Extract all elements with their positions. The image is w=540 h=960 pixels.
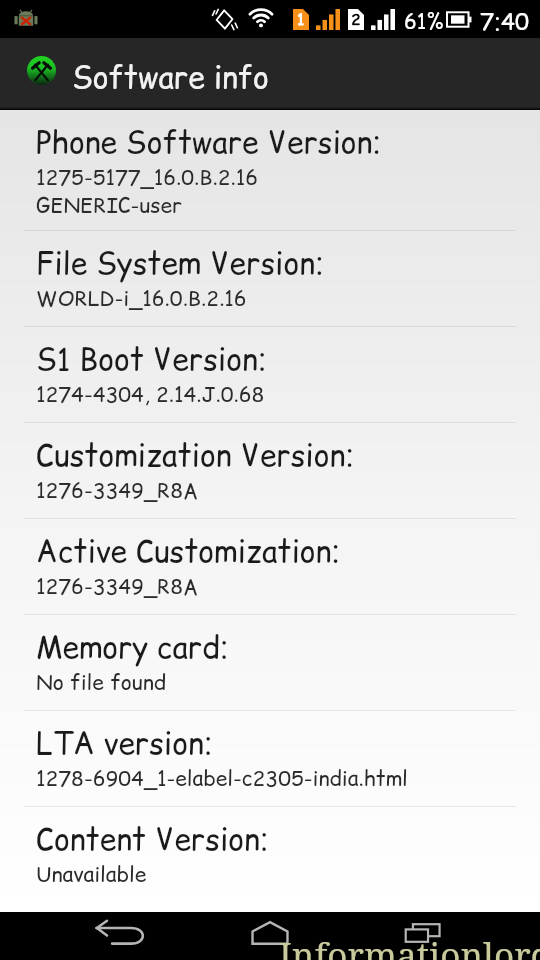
staticText: No file found: [36, 668, 167, 697]
button[interactable]: Content Version:: [0, 807, 540, 903]
button[interactable]: File System Version:: [0, 231, 540, 327]
button[interactable]: Customization Version:: [0, 423, 540, 519]
staticText: 7:40: [480, 6, 529, 38]
button[interactable]: Back: [0, 912, 190, 960]
staticText: LTA version:: [36, 722, 213, 764]
staticText: WORLD-i_16.0.B.2.16: [36, 284, 247, 313]
staticText: 1276-3349_R8A: [36, 572, 199, 601]
staticText: 1278-6904_1-elabel-c2305-india.html: [36, 764, 408, 793]
staticText: GENERIC-user: [36, 191, 183, 220]
button[interactable]: S1 Boot Version:: [0, 327, 540, 423]
staticText: S1 Boot Version:: [36, 338, 267, 380]
staticText: 2: [351, 8, 361, 29]
staticText: Unavailable: [36, 860, 147, 889]
staticText: 1276-3349_R8A: [36, 476, 199, 505]
staticText: Software info: [72, 56, 269, 98]
staticText: 1275-5177_16.0.B.2.16: [36, 163, 259, 192]
staticText: File System Version:: [36, 242, 324, 284]
staticText: 61%: [404, 7, 444, 36]
staticText: Content Version:: [36, 818, 269, 860]
staticText: 1: [297, 8, 305, 29]
button[interactable]: Memory card:: [0, 615, 540, 711]
staticText: Memory card:: [36, 626, 229, 668]
button[interactable]: Home: [190, 912, 340, 960]
staticText: 1274-4304, 2.14.J.0.68: [36, 380, 265, 409]
staticText: Informationlord: [279, 931, 540, 960]
button[interactable]: Phone Software Version:: [0, 110, 540, 231]
staticText: Customization Version:: [36, 434, 355, 476]
button[interactable]: LTA version:: [0, 711, 540, 807]
staticText: Phone Software Version:: [36, 121, 382, 163]
button[interactable]: Active Customization:: [0, 519, 540, 615]
staticText: Active Customization:: [36, 530, 341, 572]
button[interactable]: Recent apps: [340, 912, 540, 960]
